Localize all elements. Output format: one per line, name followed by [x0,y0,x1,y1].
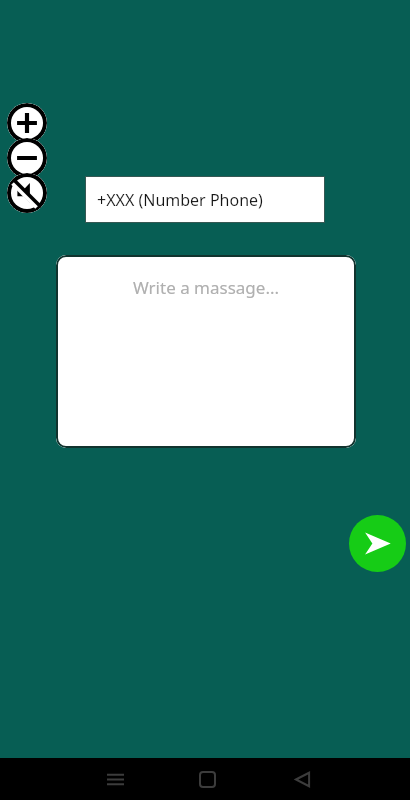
button[interactable]: Write a massage... [56,255,356,448]
staticText: +XXX (Number Phone) [97,189,263,211]
button[interactable]: +XXX (Number Phone) [85,176,325,223]
button[interactable]: Back [282,759,322,799]
button[interactable]: Increase volume [7,103,47,143]
button[interactable]: Decrease volume [7,138,47,178]
button[interactable]: Home [187,759,227,799]
button[interactable]: Recents [95,759,135,799]
button[interactable]: Send [349,515,406,572]
button[interactable]: Mute [7,173,47,213]
staticText: Write a massage... [56,276,356,299]
